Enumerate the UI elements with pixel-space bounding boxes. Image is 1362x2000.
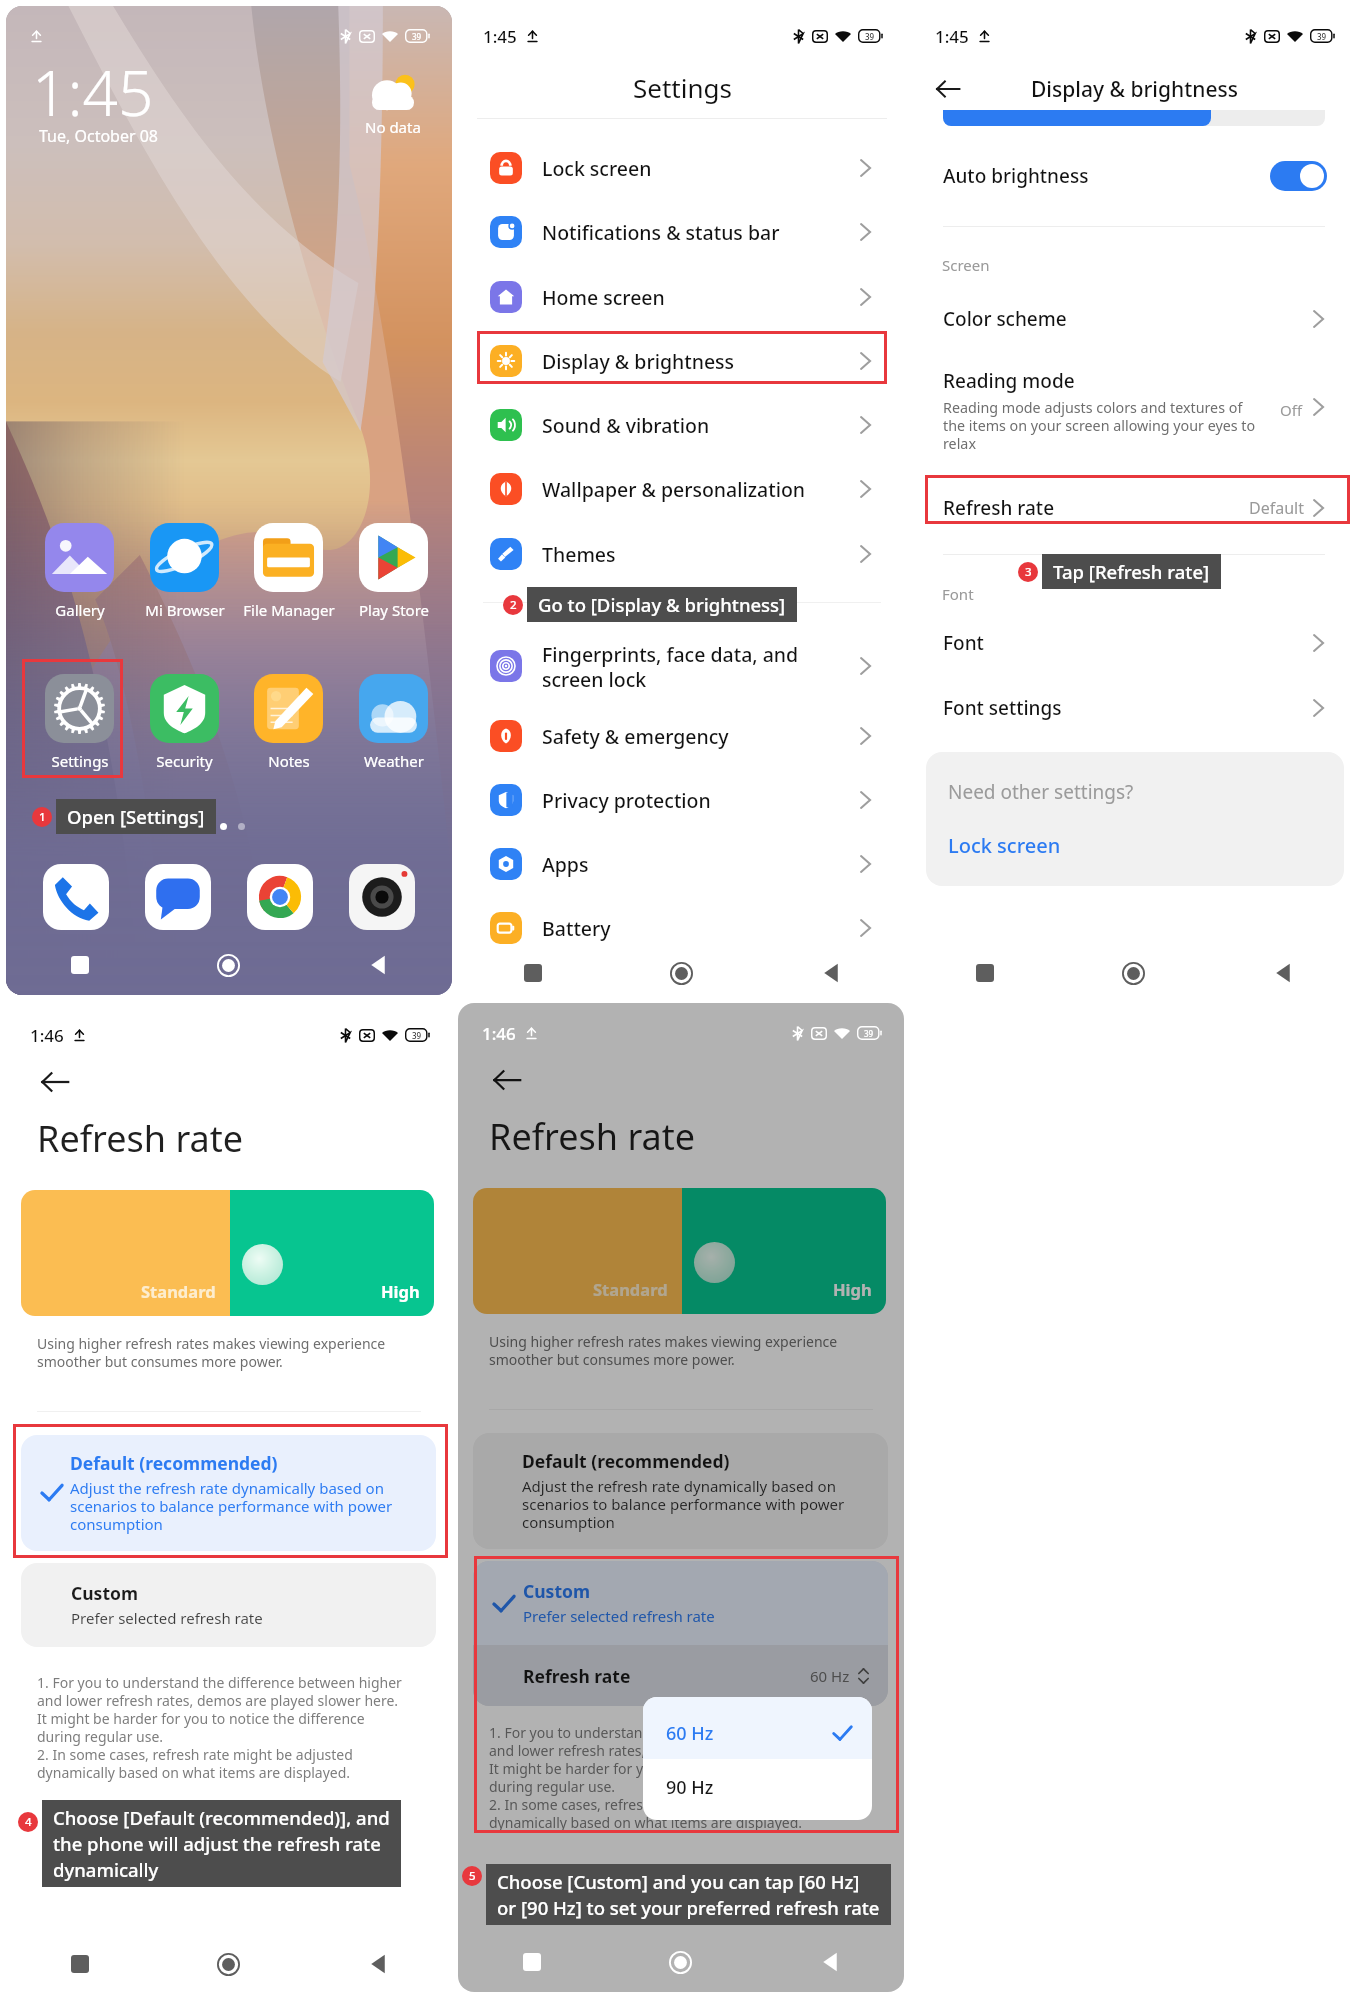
button[interactable]: Refresh rate [911, 486, 1357, 530]
button[interactable]: Home [606, 1947, 755, 1977]
button[interactable]: Home [607, 958, 756, 988]
staticText: Prefer selected refresh rate [523, 1606, 715, 1626]
staticText: Privacy protection [542, 787, 711, 814]
staticText: 5 [469, 1868, 476, 1884]
staticText: Using higher refresh rates makes viewing… [489, 1332, 849, 1369]
staticText: 1. For you to understand the difference … [37, 1673, 407, 1782]
button[interactable]: Home [154, 1949, 303, 1979]
button[interactable]: Back [1208, 958, 1357, 988]
button[interactable]: Reading mode [911, 368, 1357, 453]
button[interactable]: Back [303, 1949, 452, 1979]
button[interactable]: Gallery [32, 523, 127, 620]
button[interactable]: Mi Browser [137, 523, 232, 620]
button[interactable]: Sound & vibration [459, 399, 905, 451]
staticText: Custom [71, 1581, 138, 1605]
staticText: Standard [141, 1280, 216, 1302]
button[interactable]: Home [154, 950, 303, 980]
button[interactable]: Custom [473, 1561, 888, 1645]
button[interactable]: Camera [349, 864, 415, 930]
button[interactable]: 90 Hz [643, 1759, 872, 1820]
staticText: 90 Hz [666, 1775, 714, 1800]
staticText: 2 [510, 597, 517, 613]
button[interactable]: Custom [21, 1563, 436, 1647]
button[interactable]: Settings [32, 674, 127, 771]
staticText: Security [156, 751, 213, 771]
button[interactable]: Back [756, 958, 905, 988]
button[interactable]: Display & brightness [459, 335, 905, 387]
staticText: 39 [864, 1028, 874, 1039]
button[interactable]: Default (recommended) [21, 1435, 436, 1551]
staticText: Settings [51, 751, 109, 771]
button[interactable]: Recents [911, 958, 1059, 988]
button[interactable]: Font [911, 622, 1357, 664]
button[interactable]: Apps [459, 838, 905, 890]
staticText: 39 [412, 1030, 422, 1041]
staticText: Color scheme [943, 306, 1067, 332]
staticText: Mi Browser [145, 600, 225, 620]
button[interactable]: Play Store [346, 523, 441, 620]
button[interactable]: Recents [459, 958, 607, 988]
button[interactable]: Back [933, 74, 963, 104]
button[interactable]: Lock screen [948, 832, 1061, 859]
button[interactable]: Back [755, 1947, 904, 1977]
staticText: Play Store [359, 600, 429, 620]
button[interactable]: Recents [6, 1949, 154, 1979]
staticText: Settings [633, 70, 732, 105]
button[interactable]: Chrome [247, 864, 313, 930]
button[interactable]: Messages [145, 864, 211, 930]
button[interactable]: Home [1059, 958, 1208, 988]
button[interactable]: Back [490, 1063, 524, 1097]
button[interactable]: Back [303, 950, 452, 980]
button[interactable]: Safety & emergency [459, 710, 905, 762]
staticText: Default [1249, 497, 1304, 519]
button[interactable]: Color scheme [911, 298, 1357, 340]
button[interactable]: Themes [459, 528, 905, 580]
staticText: 39 [865, 31, 875, 42]
staticText: Notes [268, 751, 310, 771]
button[interactable]: Security [137, 674, 232, 771]
staticText: Standard [593, 1278, 668, 1300]
staticText: Tue, October 08 [39, 125, 159, 147]
staticText: Sound & vibration [542, 412, 710, 439]
staticText: Lock screen [948, 832, 1061, 859]
button[interactable]: Fingerprints, face data, and screen lock [459, 634, 905, 698]
staticText: Refresh rate [37, 1114, 244, 1163]
staticText: Choose [Default (recommended)], and the … [53, 1805, 390, 1882]
staticText: Using higher refresh rates makes viewing… [37, 1334, 397, 1371]
staticText: Home screen [542, 284, 665, 311]
button[interactable]: Recents [458, 1947, 606, 1977]
staticText: Wallpaper & personalization [542, 476, 806, 503]
button[interactable]: Recents [6, 950, 154, 980]
button[interactable]: 60 Hz [643, 1697, 872, 1759]
staticText: Off [1280, 400, 1303, 420]
button[interactable]: Battery [459, 902, 905, 954]
staticText: Auto brightness [943, 163, 1089, 189]
button[interactable]: File Manager [241, 523, 336, 620]
staticText: Themes [542, 541, 616, 568]
staticText: Reading mode [943, 368, 1075, 394]
staticText: 1:46 [482, 1022, 516, 1045]
button[interactable]: Notifications & status bar [459, 206, 905, 258]
button[interactable]: Privacy protection [459, 774, 905, 826]
button[interactable]: Back [38, 1065, 72, 1099]
button[interactable]: Refresh rate [473, 1645, 888, 1706]
button[interactable]: Weather [346, 674, 441, 771]
staticText: Choose [Custom] and you can tap [60 Hz] … [497, 1869, 880, 1920]
button[interactable]: Lock screen [459, 142, 905, 194]
staticText: Screen [942, 255, 990, 275]
staticText: Refresh rate [489, 1112, 696, 1161]
staticText: File Manager [243, 600, 335, 620]
staticText: 1:45 [483, 25, 517, 48]
staticText: Need other settings? [948, 779, 1134, 805]
button[interactable]: Auto brightness [911, 152, 1357, 200]
button[interactable]: Phone [43, 864, 109, 930]
staticText: 3 [1025, 564, 1032, 580]
button[interactable]: Notes [241, 674, 336, 771]
button[interactable]: Wallpaper & personalization [459, 463, 905, 515]
button[interactable]: Default (recommended) [473, 1433, 888, 1549]
button[interactable]: Home screen [459, 271, 905, 323]
button[interactable]: Font settings [911, 687, 1357, 729]
staticText: 60 Hz [666, 1721, 714, 1746]
staticText: Adjust the refresh rate dynamically base… [522, 1476, 854, 1532]
staticText: Safety & emergency [542, 723, 729, 750]
